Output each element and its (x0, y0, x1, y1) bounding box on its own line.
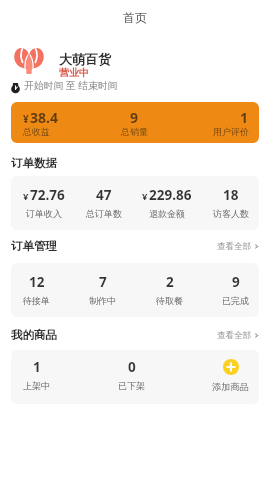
staticText: ¥ (142, 190, 148, 203)
button[interactable]: 添加商品 (212, 350, 249, 403)
staticText: 已完成 (222, 295, 249, 306)
staticText: 首页 (123, 10, 147, 25)
staticText: 开始时间 至 结束时间 (24, 79, 118, 92)
button[interactable]: 18 (213, 176, 249, 229)
staticText: 2 (166, 273, 174, 291)
staticText: 查看全部 (217, 241, 251, 252)
staticText: 已下架 (118, 380, 145, 391)
staticText: 72.76 (30, 186, 65, 204)
button[interactable]: 9 (222, 263, 249, 316)
staticText: 总销量 (121, 126, 148, 137)
staticText: 用户评价 (213, 126, 249, 137)
staticText: 38.4 (30, 108, 58, 127)
staticText: 待取餐 (156, 295, 183, 306)
button[interactable]: 7 (89, 263, 116, 316)
staticText: 订单管理 (11, 239, 57, 253)
other: 添加商品 (223, 359, 239, 375)
staticText: 9 (130, 108, 139, 127)
staticText: 1 (240, 108, 249, 127)
staticText: 访客人数 (213, 208, 249, 219)
staticText: 0 (128, 358, 136, 376)
staticText: 7 (99, 273, 107, 291)
staticText: 12 (29, 273, 45, 291)
staticText: 229.86 (149, 186, 192, 204)
staticText: ¥ (23, 190, 29, 203)
staticText: 订单收入 (26, 208, 62, 219)
staticText: 总收益 (23, 126, 50, 137)
staticText: 营业中 (59, 66, 89, 79)
staticText: 订单数据 (11, 156, 57, 170)
staticText: 添加商品 (212, 381, 249, 393)
staticText: 47 (96, 186, 112, 204)
button[interactable]: ¥ (11, 102, 259, 143)
button[interactable]: 1 (23, 350, 50, 401)
staticText: 1 (33, 358, 41, 376)
button[interactable]: 查看全部 (217, 330, 259, 341)
button[interactable]: 0 (118, 350, 145, 401)
staticText: 退款金额 (149, 208, 185, 219)
staticText: 9 (232, 273, 240, 291)
staticText: ¥ (23, 113, 29, 126)
button[interactable]: ¥ (142, 176, 192, 229)
staticText: 待接单 (23, 295, 50, 306)
button[interactable]: 47 (86, 176, 122, 229)
staticText: 上架中 (23, 380, 50, 391)
staticText: 查看全部 (217, 330, 251, 341)
staticText: 18 (223, 186, 239, 204)
staticText: 总订单数 (86, 208, 122, 219)
button[interactable]: 查看全部 (217, 241, 259, 252)
button[interactable]: 12 (23, 263, 50, 316)
button[interactable]: 2 (156, 263, 183, 316)
staticText: 制作中 (89, 295, 116, 306)
staticText: 大萌百货 (59, 51, 111, 67)
staticText: 我的商品 (11, 328, 57, 342)
button[interactable]: ¥ (23, 176, 65, 229)
